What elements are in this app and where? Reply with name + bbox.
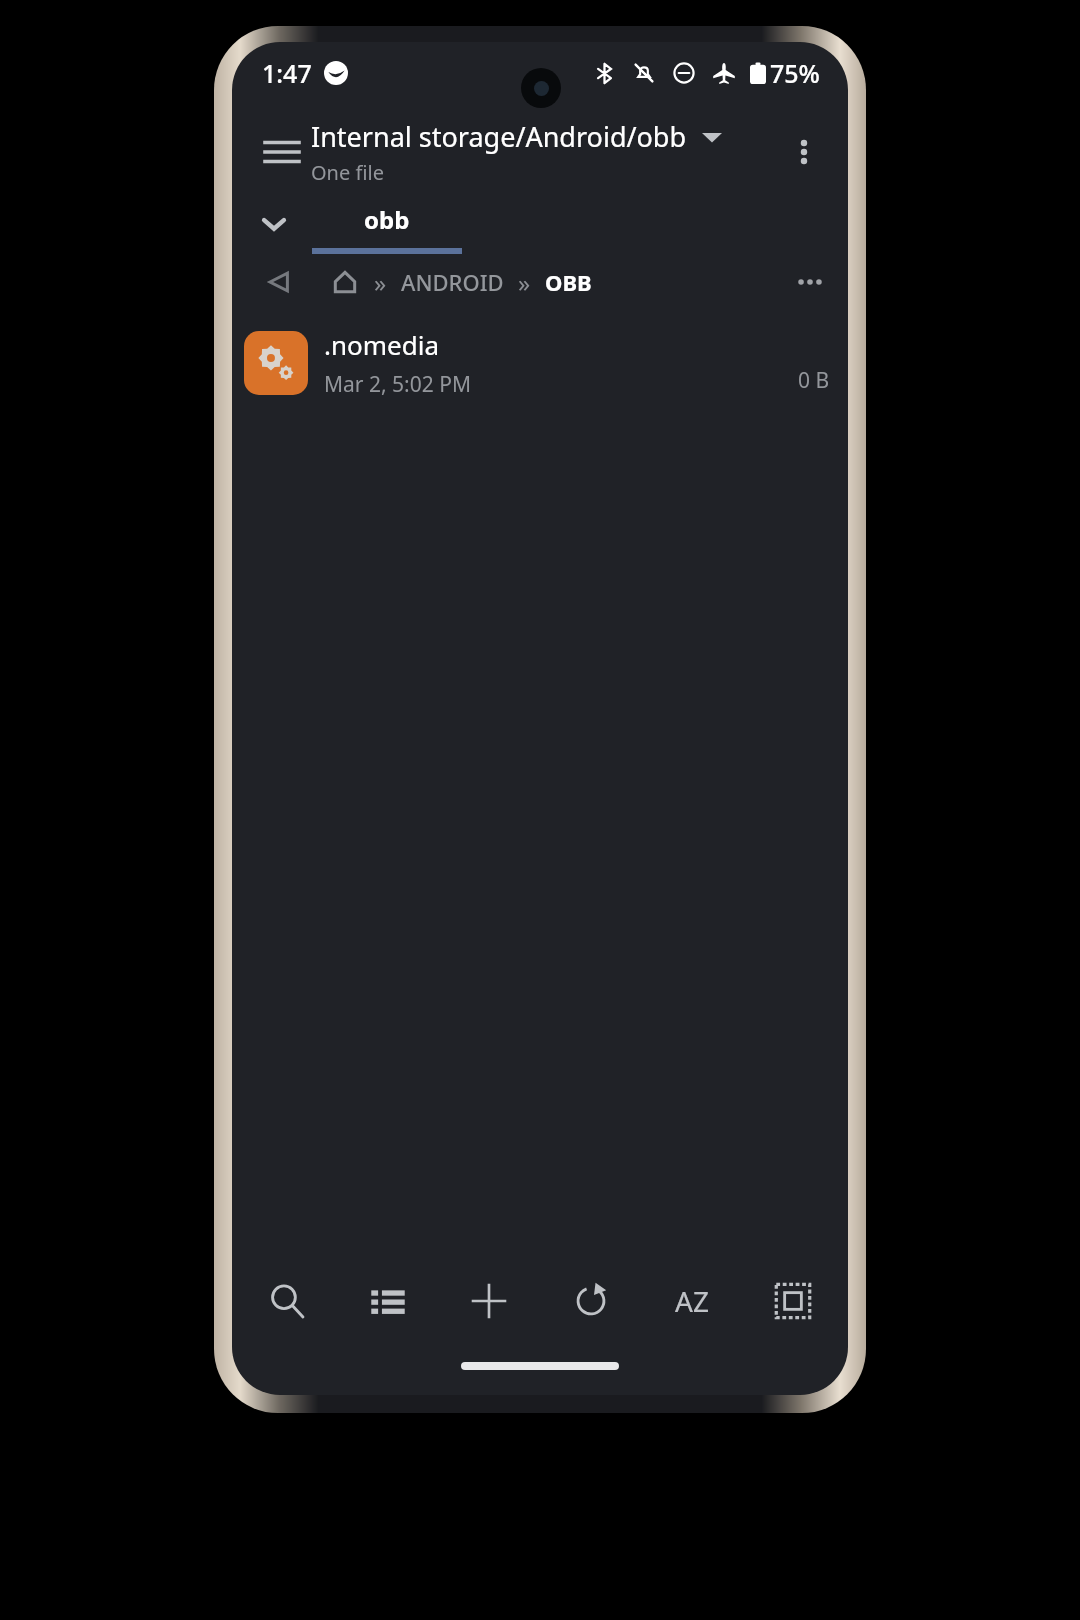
button[interactable]: Add xyxy=(443,1255,535,1347)
staticText: Internal storage/Android/obb xyxy=(311,118,687,155)
button[interactable]: Collapse tabs xyxy=(242,196,306,252)
button[interactable]: obb xyxy=(312,200,462,256)
button[interactable]: Select all xyxy=(747,1255,839,1347)
button[interactable]: .nomedia xyxy=(232,322,848,404)
button[interactable]: Sort xyxy=(646,1255,738,1347)
staticText: Mar 2, 5:02 PM xyxy=(324,370,471,399)
staticText: OBB xyxy=(545,267,592,297)
staticText: .nomedia xyxy=(324,327,440,362)
staticText: One file xyxy=(311,159,384,186)
staticText: obb xyxy=(364,203,410,236)
button[interactable]: Root xyxy=(324,261,366,303)
button[interactable]: Open navigation drawer xyxy=(246,116,318,188)
button[interactable]: Search xyxy=(241,1255,333,1347)
button[interactable]: Refresh xyxy=(545,1255,637,1347)
staticText: » xyxy=(518,266,531,299)
staticText: ANDROID xyxy=(401,267,504,297)
button[interactable]: OBB xyxy=(545,267,592,297)
button[interactable]: View mode xyxy=(342,1255,434,1347)
staticText: 75% xyxy=(770,56,820,90)
staticText: 0 B xyxy=(798,366,830,395)
button[interactable]: More options xyxy=(768,116,840,188)
button[interactable]: Back xyxy=(256,259,302,305)
staticText: 1:47 xyxy=(262,56,312,90)
button[interactable]: ANDROID xyxy=(401,267,504,297)
button[interactable]: Change path xyxy=(699,124,725,150)
staticText: » xyxy=(374,266,387,299)
button[interactable]: Path options xyxy=(786,258,834,306)
staticText: AZ xyxy=(675,1282,709,1320)
